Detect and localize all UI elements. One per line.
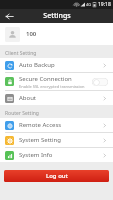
other: Open About xyxy=(101,95,108,102)
staticText: Auto Backup xyxy=(19,61,55,69)
button[interactable]: Remote Access xyxy=(0,118,113,132)
button[interactable]: 100 xyxy=(0,23,113,45)
button[interactable]: System Info xyxy=(0,148,113,162)
other: Open System Setting xyxy=(101,137,108,144)
button[interactable]: Log out xyxy=(4,170,109,182)
staticText: About xyxy=(19,94,37,102)
staticText: Remote Access xyxy=(19,121,62,129)
button[interactable]: Secure Connection xyxy=(0,73,113,90)
button[interactable]: Toggle Secure Connection xyxy=(92,78,108,86)
staticText: Client Setting xyxy=(5,50,37,57)
staticText: Enable SSL encrypted transmission xyxy=(19,84,85,89)
staticText: 4G xyxy=(86,2,92,7)
staticText: Log out xyxy=(46,172,68,180)
staticText: System Setting xyxy=(19,136,61,144)
button[interactable]: Auto Backup xyxy=(0,58,113,72)
staticText: System Info xyxy=(19,151,53,159)
button[interactable]: Back xyxy=(0,9,18,23)
staticText: 19:18 xyxy=(98,1,111,8)
staticText: Settings xyxy=(43,11,71,21)
button[interactable]: About xyxy=(0,91,113,105)
staticText: Router Setting xyxy=(5,110,39,117)
other: Open Remote Access xyxy=(101,122,108,129)
other: Open Auto Backup xyxy=(101,62,108,69)
staticText: Secure Connection xyxy=(19,75,72,83)
button[interactable]: System Setting xyxy=(0,133,113,147)
other: Open System Info xyxy=(101,152,108,159)
staticText: 100 xyxy=(26,30,37,38)
